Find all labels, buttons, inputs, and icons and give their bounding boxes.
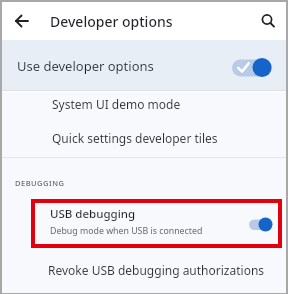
staticText: Developer options bbox=[50, 12, 173, 31]
staticText: DEBUGGING bbox=[15, 178, 65, 188]
staticText: System UI demo mode bbox=[52, 96, 181, 112]
button[interactable]: USB debugging bbox=[31, 199, 282, 248]
button[interactable]: Revoke USB debugging authorizations bbox=[2, 260, 286, 288]
button[interactable]: Quick settings developer tiles bbox=[2, 124, 286, 152]
button[interactable] bbox=[10, 9, 34, 33]
button[interactable] bbox=[256, 8, 280, 32]
button[interactable]: System UI demo mode bbox=[2, 92, 286, 120]
staticText: Quick settings developer tiles bbox=[52, 130, 218, 146]
staticText: USB debugging bbox=[50, 206, 136, 222]
staticText: Use developer options bbox=[17, 57, 154, 75]
button[interactable]: Use developer options bbox=[2, 40, 286, 90]
staticText: Revoke USB debugging authorizations bbox=[48, 262, 265, 278]
staticText: Debug mode when USB is connected bbox=[50, 225, 203, 237]
